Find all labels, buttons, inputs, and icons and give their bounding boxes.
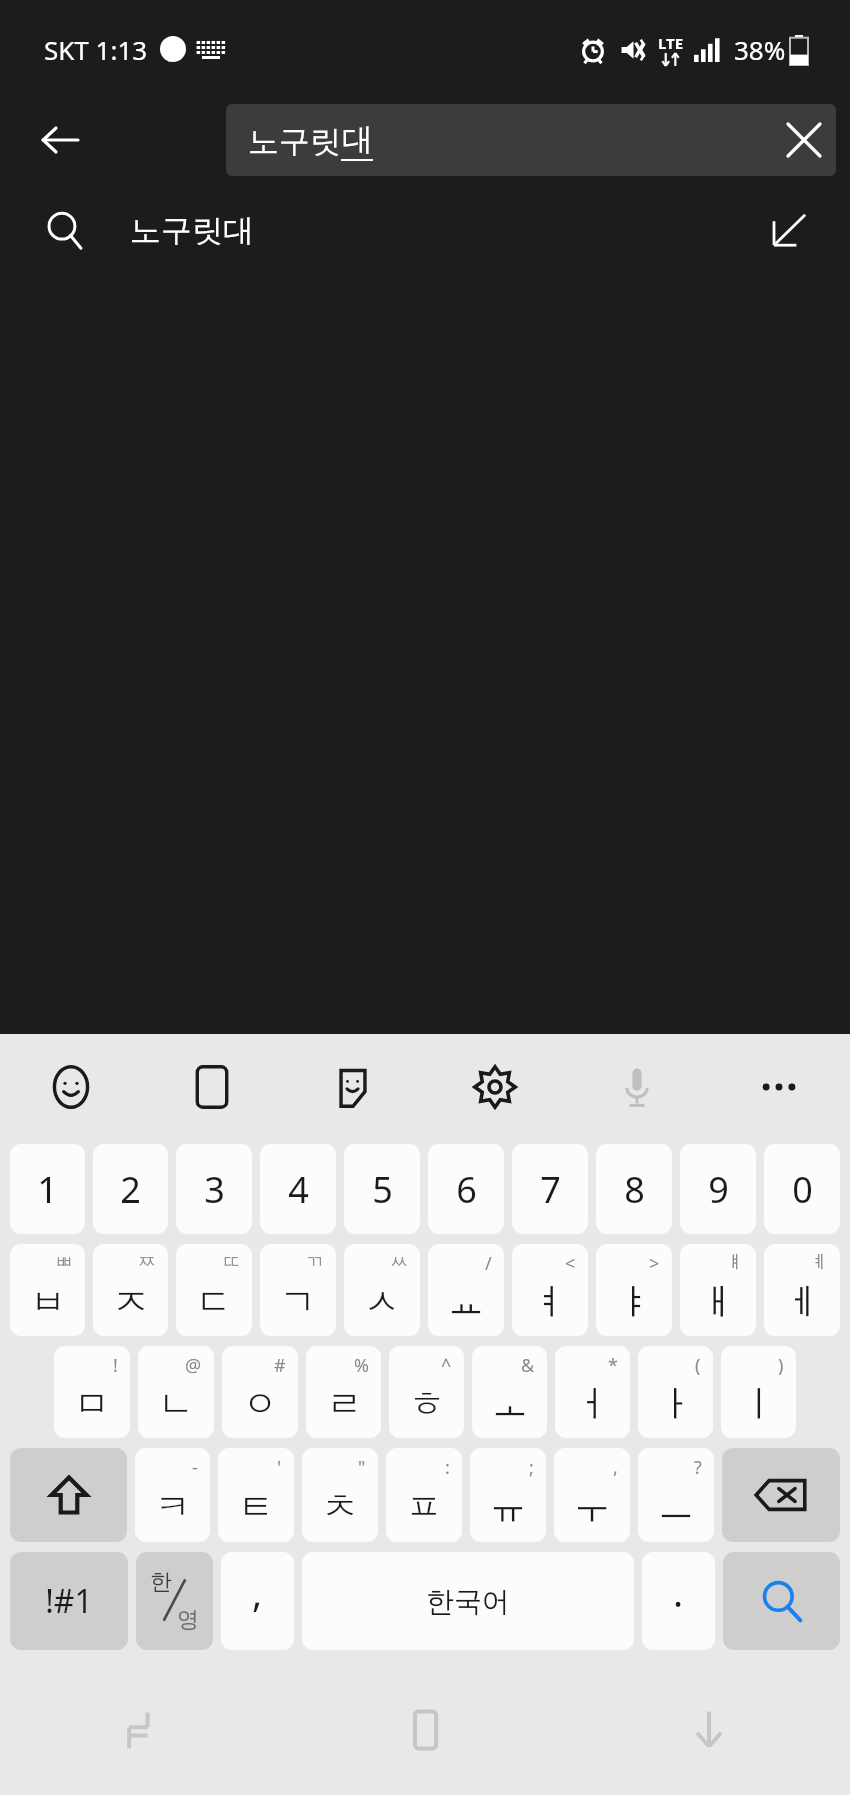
button[interactable]: 6 bbox=[428, 1144, 504, 1234]
staticText: 노구릿대 bbox=[130, 211, 254, 250]
button[interactable]: Settings bbox=[424, 1034, 566, 1139]
button[interactable]: 3 bbox=[176, 1144, 252, 1234]
staticText: ㅇ bbox=[242, 1381, 278, 1426]
staticText: 대 bbox=[342, 120, 373, 159]
button[interactable]: - bbox=[135, 1448, 210, 1542]
staticText: ㄲ bbox=[306, 1251, 324, 1274]
staticText: ㅓ bbox=[575, 1381, 611, 1426]
staticText: 한국어 bbox=[426, 1584, 510, 1619]
staticText: ㅁ bbox=[74, 1381, 110, 1426]
button[interactable]: , bbox=[221, 1552, 294, 1650]
button[interactable]: ㅆ bbox=[344, 1244, 420, 1336]
staticText: !#1 bbox=[45, 1579, 93, 1623]
staticText: < bbox=[565, 1251, 576, 1276]
button[interactable]: 0 bbox=[764, 1144, 840, 1234]
button[interactable]: ㅃ bbox=[10, 1244, 85, 1336]
button[interactable]: 2 bbox=[93, 1144, 168, 1234]
button[interactable]: 노구릿 bbox=[226, 104, 836, 176]
button[interactable]: 7 bbox=[512, 1144, 588, 1234]
staticText: ^ bbox=[441, 1353, 452, 1378]
staticText: 7 bbox=[540, 1165, 561, 1214]
button[interactable]: Sticker bbox=[282, 1034, 424, 1139]
staticText: ㅣ bbox=[741, 1381, 777, 1426]
button[interactable]: & bbox=[472, 1346, 547, 1438]
staticText: ; bbox=[529, 1455, 534, 1480]
button[interactable]: !#1 bbox=[10, 1552, 128, 1650]
button[interactable]: < bbox=[512, 1244, 588, 1336]
button[interactable]: # bbox=[222, 1346, 298, 1438]
button[interactable]: Insert suggestion bbox=[730, 182, 850, 278]
button[interactable]: More bbox=[708, 1034, 850, 1139]
staticText: - bbox=[192, 1455, 198, 1480]
button[interactable]: 9 bbox=[680, 1144, 756, 1234]
button[interactable]: % bbox=[306, 1346, 381, 1438]
button[interactable]: 4 bbox=[260, 1144, 336, 1234]
button[interactable]: : bbox=[386, 1448, 462, 1542]
button[interactable]: GIF bbox=[141, 1034, 282, 1139]
staticText: 3 bbox=[204, 1165, 225, 1214]
button[interactable]: 1 bbox=[10, 1144, 85, 1234]
staticText: ( bbox=[695, 1353, 701, 1378]
staticText: ㅆ bbox=[390, 1251, 408, 1274]
button[interactable]: 노구릿대 bbox=[0, 182, 850, 278]
staticText: , bbox=[252, 1566, 263, 1618]
staticText: ㅂ bbox=[30, 1279, 66, 1324]
button[interactable]: ) bbox=[721, 1346, 796, 1438]
button[interactable]: ; bbox=[470, 1448, 546, 1542]
button[interactable]: 8 bbox=[596, 1144, 672, 1234]
button[interactable]: ㅒ bbox=[680, 1244, 756, 1336]
staticText: % bbox=[354, 1353, 369, 1378]
staticText: ㄴ bbox=[158, 1381, 194, 1426]
button[interactable]: Shift bbox=[10, 1448, 127, 1542]
button[interactable]: > bbox=[596, 1244, 672, 1336]
staticText: 8 bbox=[624, 1165, 645, 1214]
staticText: ' bbox=[277, 1455, 282, 1480]
button[interactable]: ㅉ bbox=[93, 1244, 168, 1336]
button[interactable]: Emoji bbox=[0, 1034, 141, 1139]
staticText: ㅒ bbox=[726, 1251, 744, 1274]
staticText: " bbox=[358, 1455, 366, 1480]
button[interactable]: Home bbox=[284, 1665, 567, 1795]
button[interactable]: " bbox=[302, 1448, 378, 1542]
staticText: 38% bbox=[734, 32, 786, 67]
button[interactable]: ㅖ bbox=[764, 1244, 840, 1336]
button[interactable]: ^ bbox=[389, 1346, 464, 1438]
button[interactable]: . bbox=[642, 1552, 715, 1650]
button[interactable]: / bbox=[428, 1244, 504, 1336]
staticText: ㅗ bbox=[492, 1381, 528, 1426]
button[interactable]: ㄲ bbox=[260, 1244, 336, 1336]
button[interactable]: 한국어 bbox=[302, 1552, 634, 1650]
button[interactable]: Voice input bbox=[566, 1034, 708, 1139]
staticText: 9 bbox=[708, 1165, 729, 1214]
button[interactable]: * bbox=[555, 1346, 630, 1438]
button[interactable]: Search bbox=[723, 1552, 840, 1650]
button[interactable]: Korean English toggle bbox=[136, 1552, 213, 1650]
button[interactable]: Clear bbox=[772, 108, 836, 172]
staticText: @ bbox=[185, 1353, 202, 1378]
staticText: & bbox=[521, 1353, 535, 1378]
staticText: * bbox=[608, 1353, 618, 1378]
staticText: ㄷ bbox=[196, 1279, 232, 1324]
staticText: ? bbox=[694, 1455, 702, 1480]
staticText: ㅈ bbox=[113, 1279, 149, 1324]
staticText: ㅠ bbox=[490, 1484, 526, 1529]
button[interactable]: @ bbox=[138, 1346, 214, 1438]
button[interactable]: ( bbox=[638, 1346, 713, 1438]
button[interactable]: 5 bbox=[344, 1144, 420, 1234]
button[interactable]: , bbox=[554, 1448, 630, 1542]
button[interactable]: ! bbox=[54, 1346, 130, 1438]
button[interactable]: ' bbox=[218, 1448, 294, 1542]
button[interactable]: Back bbox=[28, 108, 92, 172]
staticText: ㅉ bbox=[138, 1251, 156, 1274]
button[interactable]: ㄸ bbox=[176, 1244, 252, 1336]
staticText: ㅡ bbox=[658, 1484, 694, 1529]
button[interactable]: ? bbox=[638, 1448, 714, 1542]
staticText: 1 bbox=[37, 1165, 58, 1214]
staticText: ) bbox=[778, 1353, 784, 1378]
staticText: SKT 1:13 bbox=[44, 32, 148, 67]
staticText: ㅏ bbox=[658, 1381, 694, 1426]
staticText: ㄹ bbox=[326, 1381, 362, 1426]
button[interactable]: Backspace bbox=[722, 1448, 840, 1542]
